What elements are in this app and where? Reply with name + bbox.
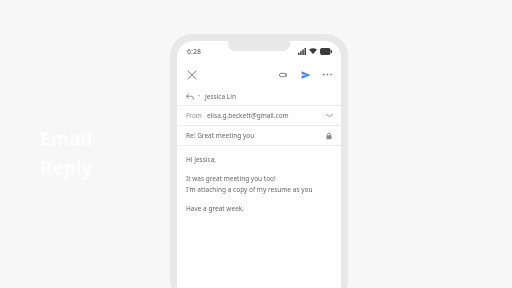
staticText: elisa.g.beckett@gmail.com [207, 111, 289, 120]
button[interactable]: Re: Great meeting you [177, 126, 341, 145]
button[interactable]: Attach file [275, 66, 292, 83]
button[interactable]: From [177, 106, 341, 125]
staticText: Jessica Lin [205, 92, 236, 101]
button[interactable]: • [177, 87, 341, 105]
button[interactable]: Send [297, 66, 314, 83]
button[interactable]: More options [319, 66, 336, 83]
staticText: Re: Great meeting you [186, 131, 255, 140]
staticText: Have a great week. [186, 204, 245, 213]
staticText: From [186, 111, 202, 120]
button[interactable]: Close [183, 66, 200, 83]
staticText: I'm attaching a copy of my resume as you… [186, 185, 332, 194]
staticText: 6:28 [187, 47, 201, 57]
staticText: Hi Jessica, [186, 155, 217, 164]
staticText: • [198, 92, 201, 100]
staticText: It was great meeting you too! [186, 174, 276, 183]
